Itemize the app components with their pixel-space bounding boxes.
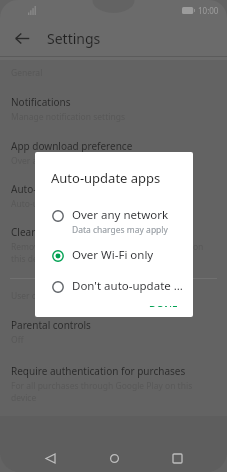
button[interactable]: Back: [37, 445, 63, 471]
button[interactable]: Back: [8, 24, 36, 52]
button[interactable]: Require authentication for purchases: [0, 364, 227, 404]
staticText: General: [11, 67, 43, 79]
button[interactable]: Over Wi-Fi only: [35, 245, 193, 267]
staticText: Off: [11, 334, 24, 346]
button[interactable]: App download preference: [0, 139, 227, 167]
button[interactable]: Clear local search history: [0, 225, 227, 265]
button[interactable]: Home: [101, 445, 127, 471]
button[interactable]: Parental controls: [0, 318, 227, 346]
staticText: Data charges may apply: [72, 224, 168, 236]
button[interactable]: Auto-update apps: [0, 182, 227, 210]
staticText: App download preference: [11, 139, 133, 153]
staticText: Clear local search history: [11, 225, 129, 239]
staticText: Auto-update apps: [51, 169, 161, 187]
staticText: Over any network: [72, 207, 169, 223]
button[interactable]: Don't auto-update apps: [35, 276, 193, 298]
staticText: Settings: [47, 29, 101, 48]
staticText: Over Wi-Fi only: [72, 247, 154, 263]
staticText: 10:00: [198, 5, 219, 16]
button[interactable]: Over any network: [35, 205, 193, 238]
staticText: Remove all the searches you have perform…: [11, 241, 216, 265]
staticText: Require authentication for purchases: [11, 364, 186, 378]
staticText: DONE: [149, 303, 178, 307]
staticText: Auto-update apps over Wi-Fi only: [11, 198, 144, 210]
staticText: Notifications: [11, 95, 71, 109]
staticText: Auto-update apps: [11, 182, 96, 196]
button[interactable]: Notifications: [0, 95, 227, 123]
staticText: Over any network: [11, 155, 83, 167]
staticText: User controls: [11, 290, 65, 302]
staticText: Parental controls: [11, 318, 91, 332]
button[interactable]: Recent apps: [164, 445, 190, 471]
button[interactable]: DONE: [142, 299, 185, 311]
staticText: Manage notification settings: [11, 111, 125, 123]
staticText: Don't auto-update apps: [72, 278, 185, 294]
